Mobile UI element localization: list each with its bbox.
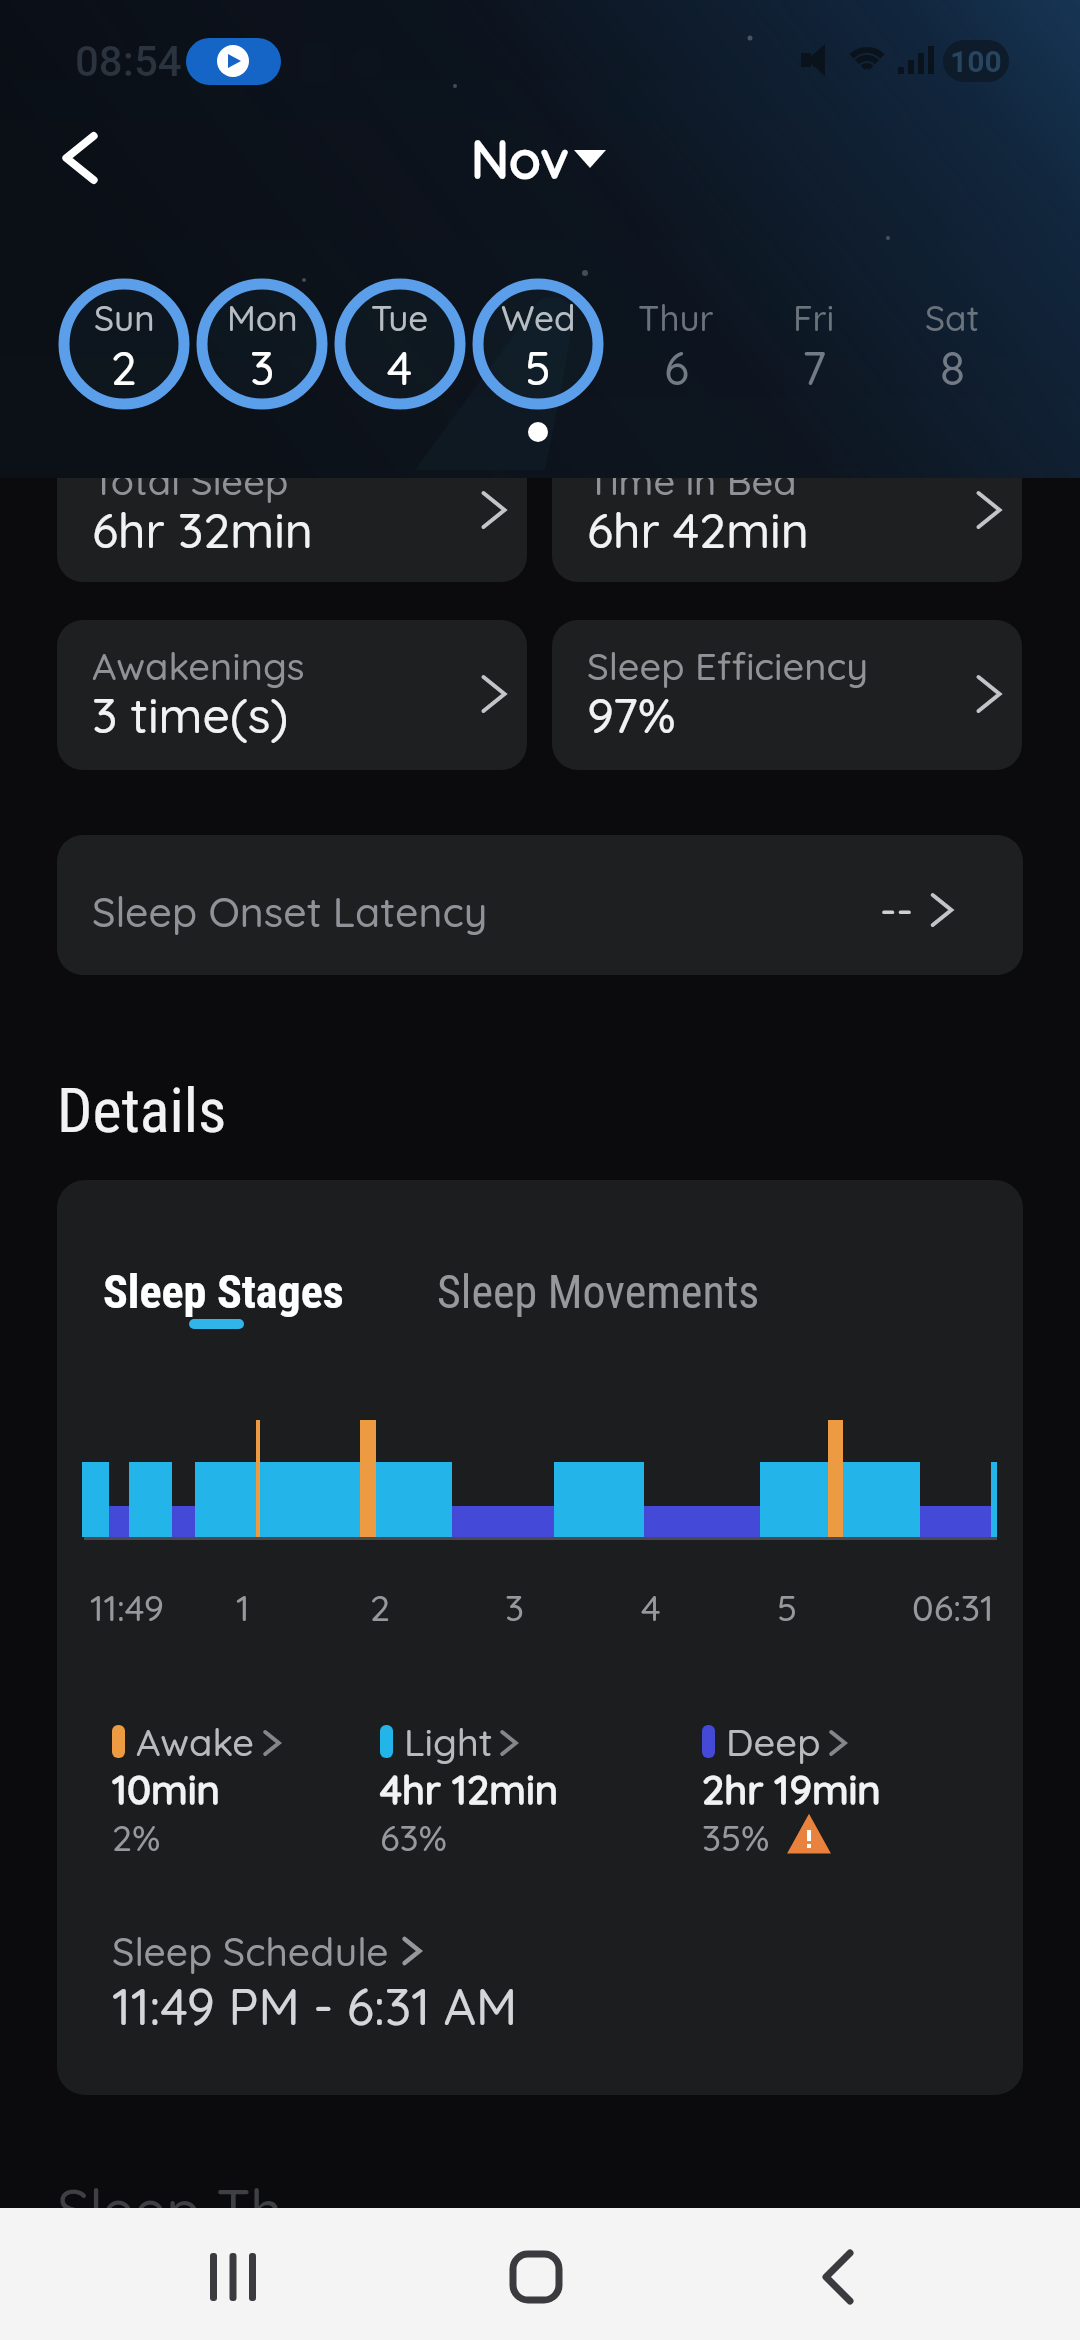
staticText: 5 bbox=[525, 339, 551, 397]
staticText: Awake bbox=[136, 1718, 255, 1766]
staticText: 5 bbox=[777, 1585, 798, 1630]
staticText: -- bbox=[880, 883, 913, 936]
staticText: Sun bbox=[94, 296, 155, 340]
button[interactable] bbox=[437, 1255, 757, 1325]
staticText: 7 bbox=[802, 339, 827, 397]
staticText: 11:49 PM - 6:31 AM bbox=[112, 1975, 518, 2038]
staticText: 4 bbox=[387, 339, 413, 397]
staticText: Sleep Schedule bbox=[112, 1927, 389, 1976]
staticText: Sat bbox=[925, 296, 980, 340]
staticText: Light bbox=[404, 1718, 493, 1766]
staticText: 3 bbox=[250, 339, 275, 397]
staticText: 4 bbox=[641, 1585, 661, 1630]
staticText: Wed bbox=[501, 296, 576, 340]
button[interactable] bbox=[334, 278, 466, 410]
staticText: Sleep Movements bbox=[437, 1265, 760, 1319]
staticText: 6hr 32min bbox=[92, 500, 313, 560]
staticText: 10min bbox=[112, 1764, 220, 1814]
staticText: Sleep Onset Latency bbox=[92, 886, 488, 937]
staticText: 8 bbox=[940, 339, 965, 397]
staticText: Fri bbox=[793, 296, 835, 340]
staticText: Details bbox=[57, 1074, 227, 1147]
staticText: 35% bbox=[702, 1815, 770, 1860]
staticText: 1 bbox=[236, 1585, 250, 1630]
button[interactable] bbox=[472, 278, 604, 410]
staticText: Tue bbox=[371, 296, 429, 340]
staticText: 97% bbox=[587, 685, 676, 745]
staticText: 63% bbox=[380, 1815, 447, 1860]
staticText: 3 bbox=[505, 1585, 525, 1630]
staticText: Total Sleep bbox=[92, 457, 289, 505]
staticText: Thur bbox=[638, 296, 714, 340]
button[interactable] bbox=[380, 1715, 610, 1860]
button[interactable] bbox=[486, 2227, 586, 2327]
staticText: 100 bbox=[950, 44, 1002, 79]
button[interactable] bbox=[57, 440, 527, 582]
button[interactable] bbox=[702, 1715, 932, 1860]
button[interactable] bbox=[748, 278, 880, 410]
staticText: Time in Bed bbox=[587, 457, 797, 505]
staticText: Sleep Efficiency bbox=[587, 642, 869, 690]
staticText: 2 bbox=[370, 1585, 391, 1630]
button[interactable] bbox=[886, 278, 1018, 410]
button[interactable] bbox=[112, 1715, 342, 1860]
staticText: Deep bbox=[726, 1718, 821, 1766]
staticText: Mon bbox=[227, 296, 298, 340]
staticText: 2 bbox=[111, 339, 137, 397]
staticText: 11:49 bbox=[90, 1585, 165, 1630]
staticText: 2% bbox=[112, 1815, 161, 1860]
button[interactable] bbox=[610, 278, 742, 410]
staticText: Nov bbox=[471, 126, 569, 191]
button[interactable] bbox=[58, 278, 190, 410]
button[interactable] bbox=[103, 1255, 343, 1335]
staticText: 06:31 bbox=[912, 1585, 994, 1630]
staticText: 2hr 19min bbox=[702, 1764, 881, 1814]
staticText: Sleep Stages bbox=[103, 1265, 344, 1319]
button[interactable] bbox=[57, 835, 1023, 975]
button[interactable] bbox=[112, 1920, 442, 1980]
button[interactable] bbox=[183, 2227, 283, 2327]
button[interactable] bbox=[790, 2227, 890, 2327]
button[interactable] bbox=[552, 440, 1022, 582]
button[interactable] bbox=[40, 123, 110, 193]
button[interactable] bbox=[57, 620, 527, 770]
staticText: 6 bbox=[664, 339, 689, 397]
staticText: 4hr 12min bbox=[380, 1764, 559, 1814]
staticText: Awakenings bbox=[92, 642, 305, 690]
staticText: 6hr 42min bbox=[587, 500, 809, 560]
staticText: Sleep Th bbox=[57, 2174, 283, 2244]
button[interactable] bbox=[552, 620, 1022, 770]
button[interactable] bbox=[196, 278, 328, 410]
button[interactable] bbox=[440, 120, 640, 196]
staticText: 08:54 bbox=[75, 37, 182, 86]
staticText: 3 time(s) bbox=[92, 685, 289, 745]
